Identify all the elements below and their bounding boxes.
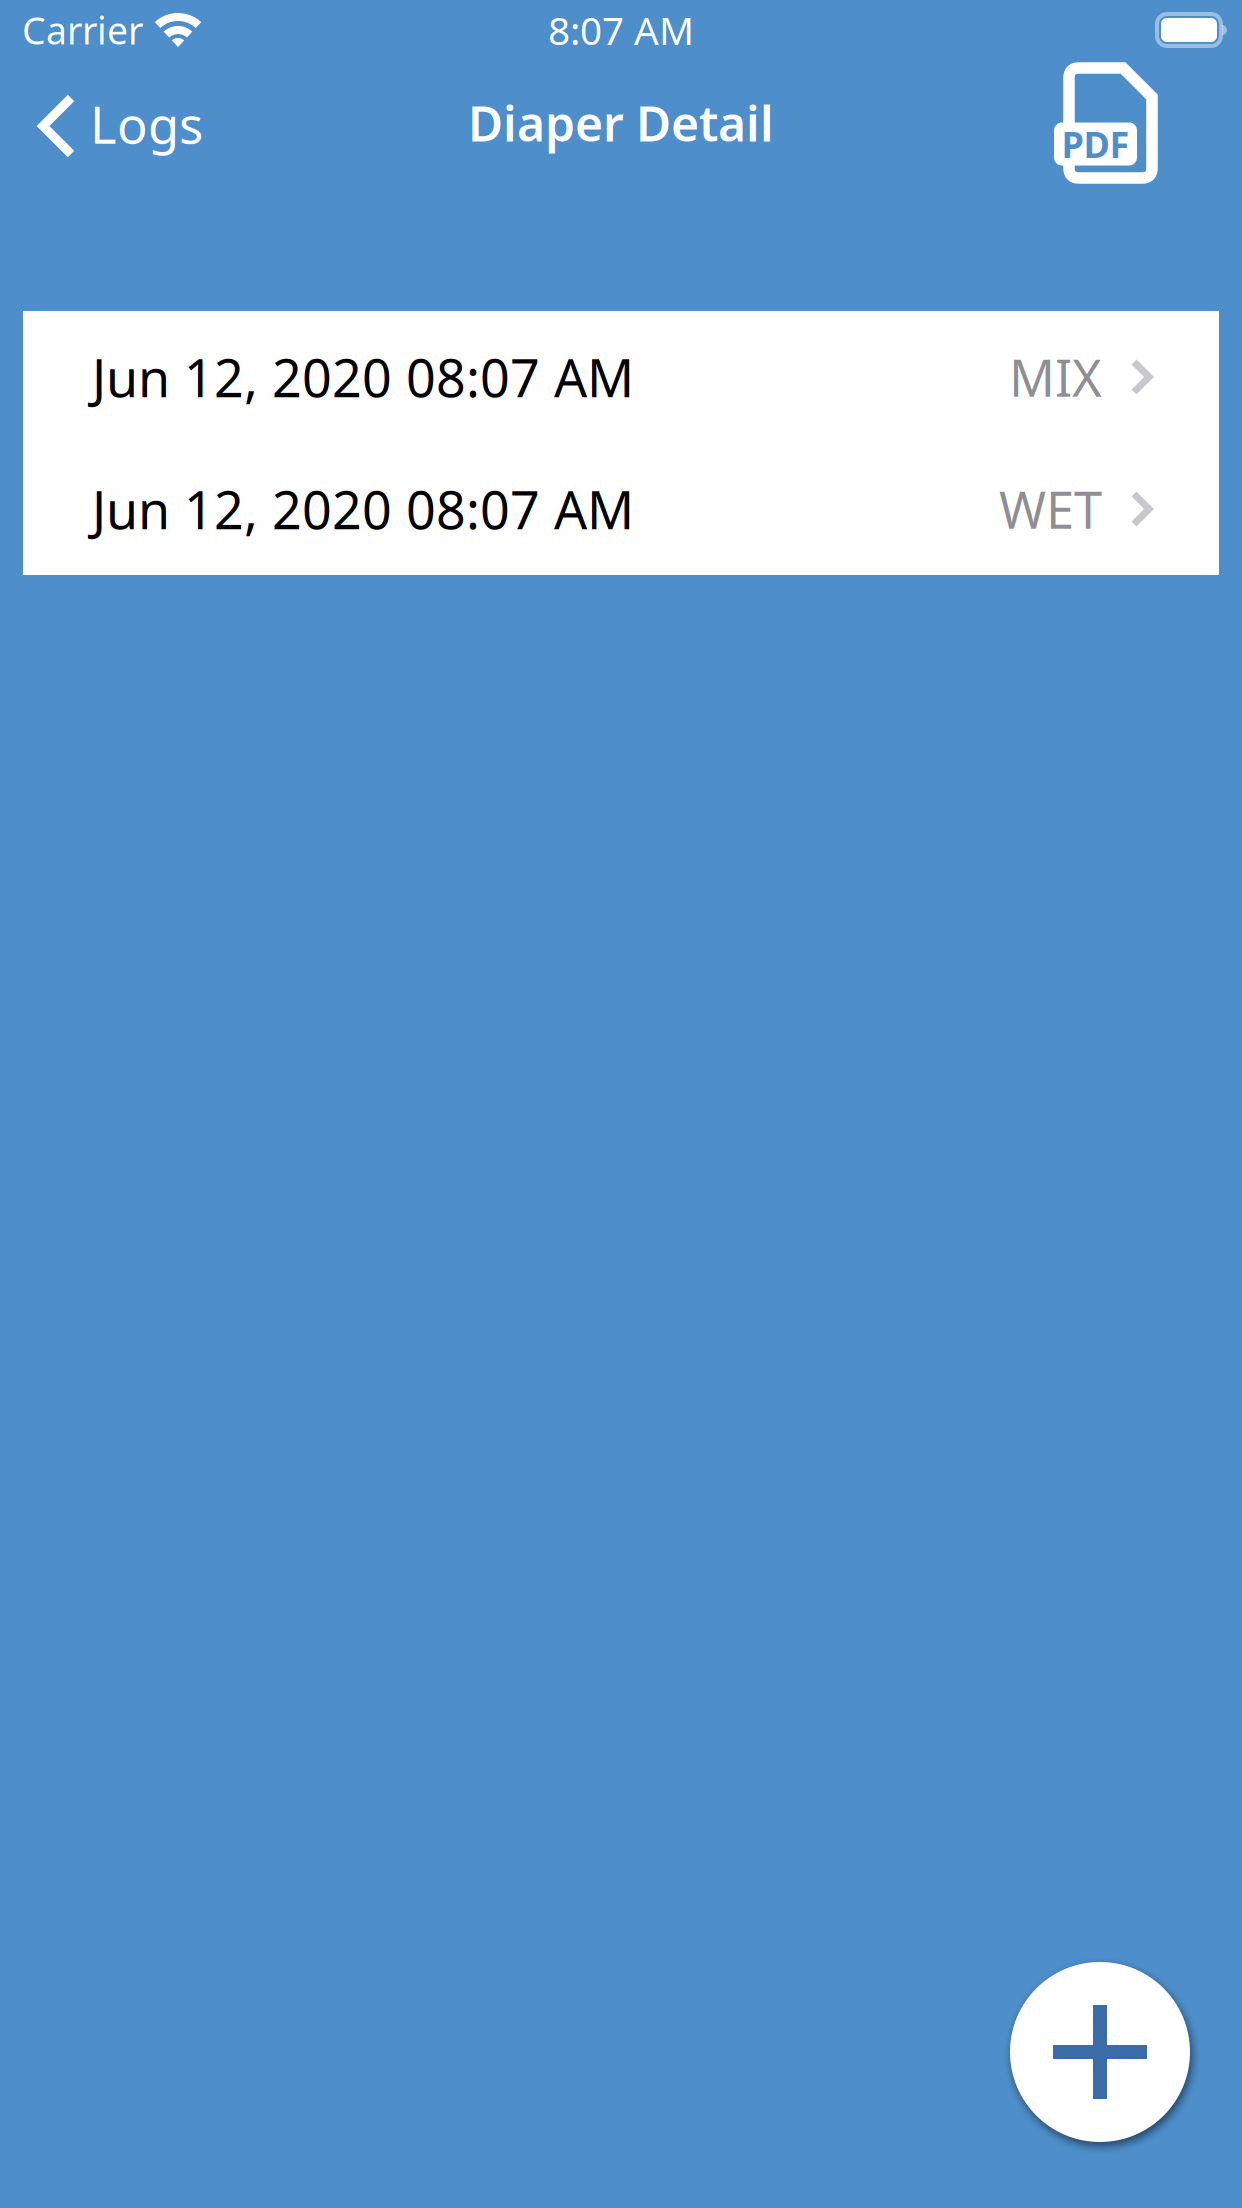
staticText: MIX [1009,343,1102,411]
button[interactable]: Jun 12, 2020 08:07 AM [23,443,1219,575]
button[interactable]: Add entry [1010,1962,1190,2142]
staticText: Logs [90,90,203,158]
staticText: Jun 12, 2020 08:07 AM [92,474,634,544]
button[interactable]: Jun 12, 2020 08:07 AM [23,311,1219,443]
staticText: PDF [1061,120,1129,168]
staticText: WET [999,475,1102,543]
staticText: Jun 12, 2020 08:07 AM [92,342,634,412]
staticText: Diaper Detail [468,91,774,155]
button[interactable]: Logs [0,60,221,192]
button[interactable]: Export PDF [1057,60,1242,192]
staticText: Carrier [22,5,143,55]
staticText: 8:07 AM [548,4,694,56]
